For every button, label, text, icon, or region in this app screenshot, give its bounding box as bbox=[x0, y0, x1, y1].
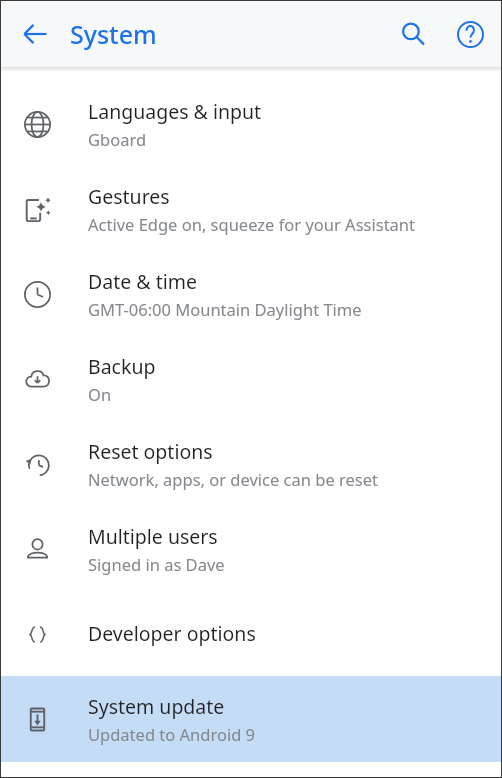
staticText: Developer options bbox=[88, 620, 256, 647]
button[interactable]: Backup bbox=[0, 336, 502, 421]
staticText: Network, apps, or device can be reset bbox=[88, 468, 378, 490]
button[interactable]: Reset options bbox=[0, 421, 502, 506]
staticText: Gestures bbox=[88, 183, 170, 210]
button[interactable]: Back bbox=[14, 13, 56, 55]
staticText: Backup bbox=[88, 353, 156, 380]
button[interactable]: Multiple users bbox=[0, 506, 502, 591]
staticText: Active Edge on, squeeze for your Assista… bbox=[88, 213, 415, 235]
button[interactable]: Help bbox=[448, 12, 492, 56]
button[interactable]: System update bbox=[0, 676, 502, 762]
staticText: System update bbox=[88, 693, 225, 720]
staticText: Languages & input bbox=[88, 98, 262, 125]
staticText: Reset options bbox=[88, 438, 213, 465]
button[interactable]: Developer options bbox=[0, 591, 502, 676]
staticText: GMT-06:00 Mountain Daylight Time bbox=[88, 298, 362, 320]
staticText: Updated to Android 9 bbox=[88, 723, 256, 745]
staticText: Gboard bbox=[88, 128, 147, 150]
button[interactable]: Date & time bbox=[0, 251, 502, 336]
button[interactable]: Search bbox=[391, 12, 435, 56]
staticText: On bbox=[88, 383, 112, 405]
staticText: System bbox=[70, 17, 157, 51]
button[interactable]: Languages & input bbox=[0, 81, 502, 166]
staticText: Signed in as Dave bbox=[88, 553, 225, 575]
staticText: Date & time bbox=[88, 268, 197, 295]
staticText: Multiple users bbox=[88, 523, 218, 550]
button[interactable]: Gestures bbox=[0, 166, 502, 251]
